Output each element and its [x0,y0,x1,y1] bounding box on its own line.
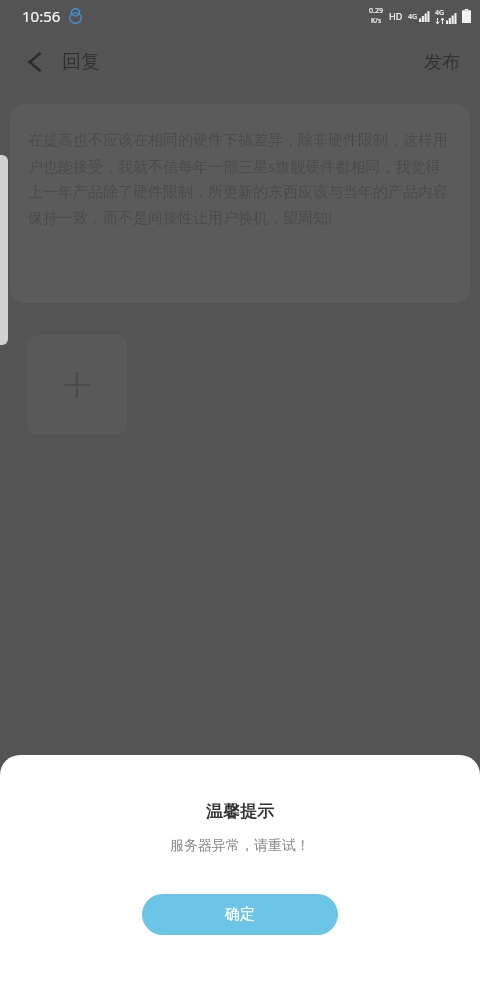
button[interactable]: 发布 [404,41,480,84]
staticText: 4G [408,12,418,22]
staticText: 10:56 [22,6,61,26]
staticText: HD [389,10,403,22]
staticText: 温馨提示 [206,801,274,822]
button[interactable]: 确定 [142,894,338,935]
staticText: 0.29 [369,6,383,16]
button[interactable]: 在提高也不应该在相同的硬件下搞差异，除非硬件限制，这样用户也能接受，我就不信每年… [10,104,470,303]
button[interactable]: Back [0,41,116,83]
staticText: 4G [435,8,445,18]
staticText: K/s [371,16,382,26]
staticText: 确定 [225,905,255,924]
staticText: 服务器异常，请重试！ [170,837,310,855]
staticText: 回复 [62,50,100,74]
other: Back [22,49,48,75]
staticText: 发布 [424,51,460,74]
staticText: 在提高也不应该在相同的硬件下搞差异，除非硬件限制，这样用户也能接受，我就不信每年… [28,131,454,227]
